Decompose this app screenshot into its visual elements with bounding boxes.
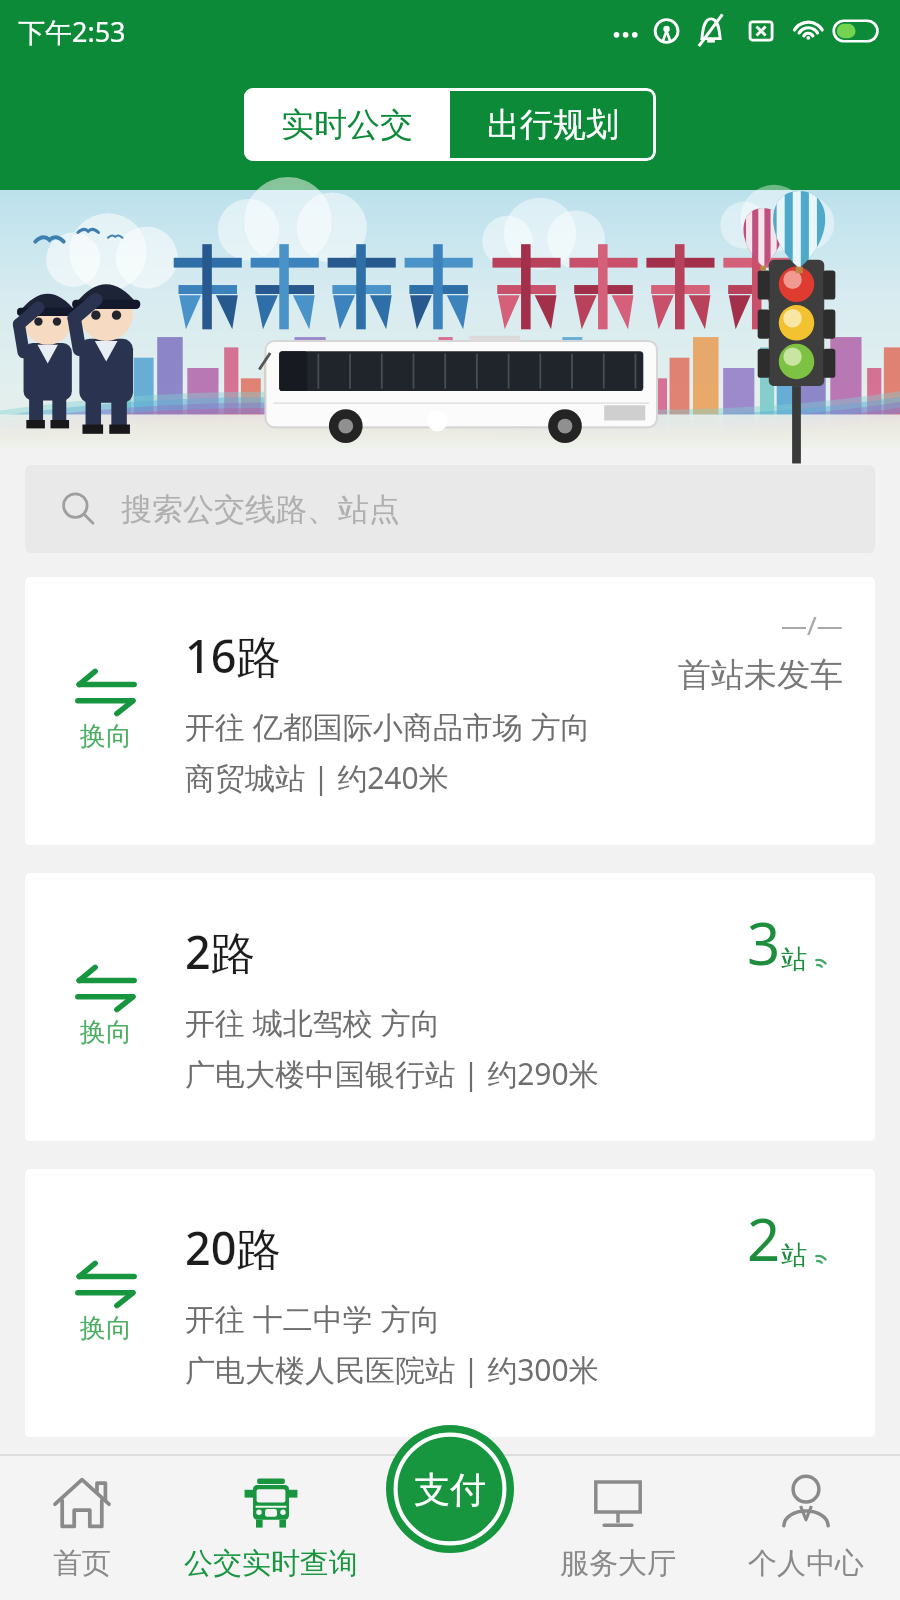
staticText: 换向 <box>80 1312 132 1345</box>
staticText: 广电大楼中国银行站 | 约290米 <box>185 1053 599 1094</box>
button[interactable]: 公交实时查询 <box>164 1455 377 1600</box>
button[interactable]: 搜索 <box>25 465 875 553</box>
staticText: 首页 <box>53 1545 111 1582</box>
other: 换向 <box>74 1262 138 1306</box>
staticText: 3 <box>747 903 781 982</box>
staticText: 服务大厅 <box>560 1545 676 1582</box>
button[interactable]: 实时公交 <box>244 88 450 161</box>
button[interactable]: 换向 <box>25 873 875 1141</box>
button[interactable]: 平安出行 和谐交通 广告横幅 <box>0 190 900 448</box>
staticText: 搜索公交线路、站点 <box>121 490 400 529</box>
button[interactable]: 首页 <box>0 1455 164 1600</box>
other: 首页 <box>52 1473 112 1533</box>
staticText: 开往 亿都国际小商品市场 方向 <box>185 706 591 747</box>
other: 换向 <box>74 670 138 714</box>
staticText: —/— <box>781 607 843 642</box>
staticText: 商贸城站 | 约240米 <box>185 757 449 798</box>
staticText: 换向 <box>80 1016 132 1049</box>
staticText: 广电大楼人民医院站 | 约300米 <box>185 1349 599 1390</box>
button[interactable]: 出行规划 <box>450 88 656 161</box>
button[interactable]: 换向 <box>25 577 875 845</box>
staticText: 换向 <box>80 720 132 753</box>
other: 公交实时查询 <box>241 1473 301 1533</box>
staticText: 16路 <box>185 625 282 686</box>
button[interactable]: 个人中心 <box>712 1455 900 1600</box>
staticText: 个人中心 <box>748 1545 864 1582</box>
staticText: 下午2:53 <box>18 13 126 50</box>
staticText: 实时公交 <box>281 104 413 146</box>
staticText: 2路 <box>185 921 256 982</box>
staticText: 20路 <box>185 1217 282 1278</box>
staticText: 站 <box>781 943 807 976</box>
staticText: 站 <box>781 1239 807 1272</box>
other: 个人中心 <box>776 1473 836 1533</box>
other: 换向 <box>74 966 138 1010</box>
staticText: 支付 <box>414 1467 486 1512</box>
button[interactable]: 支付 <box>386 1425 514 1553</box>
button[interactable]: 换向 <box>25 1169 875 1437</box>
staticText: 公交实时查询 <box>184 1545 358 1582</box>
staticText: 首站未发车 <box>678 654 843 696</box>
staticText: 开往 十二中学 方向 <box>185 1298 441 1339</box>
other: 服务大厅 <box>588 1473 648 1533</box>
staticText: 2 <box>747 1199 781 1278</box>
button[interactable]: 服务大厅 <box>524 1455 712 1600</box>
other: 搜索 <box>59 490 97 528</box>
staticText: 出行规划 <box>487 104 619 146</box>
staticText: 开往 城北驾校 方向 <box>185 1002 441 1043</box>
